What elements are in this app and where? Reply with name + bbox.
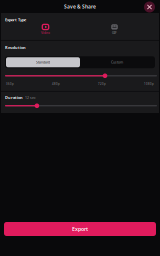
staticText: 360p [6, 82, 14, 86]
staticText: Video [41, 31, 50, 35]
staticText: 480p [52, 82, 60, 86]
button[interactable]: Custom [80, 57, 154, 67]
button[interactable]: Standard [6, 57, 80, 67]
staticText: Custom [111, 60, 123, 64]
staticText: Standard [36, 60, 50, 64]
button[interactable]: Video [11, 24, 80, 35]
staticText: GIF [112, 31, 117, 35]
staticText: Resolution [5, 45, 26, 50]
button[interactable]: Close [144, 1, 155, 12]
staticText: Duration [5, 95, 23, 100]
staticText: Save & Share [64, 3, 96, 10]
staticText: Export Type [5, 17, 26, 22]
staticText: Export [72, 225, 88, 233]
button[interactable]: Export [4, 222, 156, 236]
staticText: 12 sec [25, 95, 36, 100]
staticText: 1080p [144, 82, 154, 86]
button[interactable]: GIF [80, 24, 149, 35]
staticText: 720p [98, 82, 106, 86]
